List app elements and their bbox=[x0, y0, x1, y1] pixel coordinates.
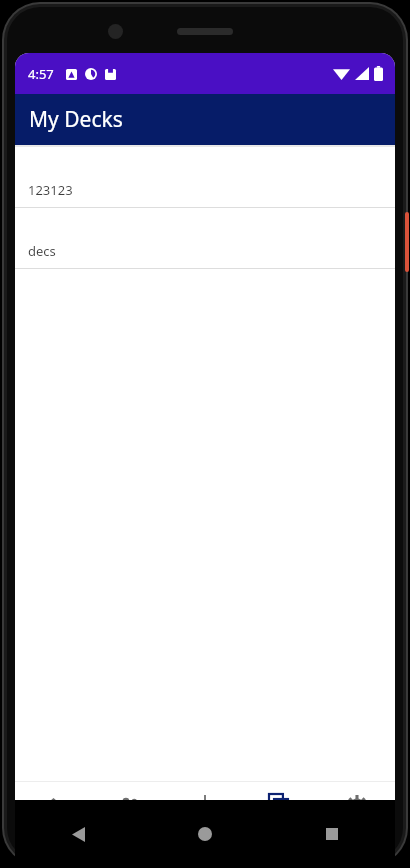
staticText: 123123 bbox=[28, 181, 73, 199]
button[interactable]: Home bbox=[190, 819, 220, 849]
button[interactable]: 123123 bbox=[15, 147, 395, 208]
button[interactable]: Home bbox=[15, 782, 91, 830]
staticText: 4:57 bbox=[28, 65, 54, 83]
staticText: My Decks bbox=[29, 105, 123, 134]
button[interactable]: Add bbox=[167, 782, 243, 830]
button[interactable]: Back bbox=[63, 819, 93, 849]
button[interactable]: Friends bbox=[91, 782, 167, 830]
button[interactable]: Recent apps bbox=[317, 819, 347, 849]
staticText: decs bbox=[28, 242, 56, 260]
button[interactable]: Settings bbox=[319, 782, 395, 830]
button[interactable]: decs bbox=[15, 208, 395, 269]
button[interactable]: Decks bbox=[243, 782, 319, 830]
